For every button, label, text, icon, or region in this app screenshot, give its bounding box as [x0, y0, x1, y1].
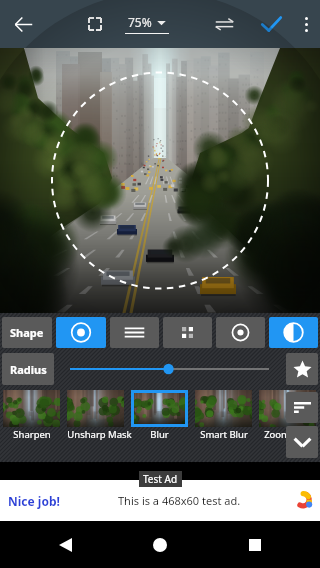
button[interactable]: Compare — [204, 0, 244, 48]
staticText: Radius — [10, 362, 47, 377]
button[interactable]: Sharpen — [3, 390, 60, 440]
staticText: This is a 468x60 test ad. — [118, 493, 241, 508]
staticText: Zoom Blur — [264, 428, 311, 440]
button[interactable]: 75% — [119, 0, 175, 48]
staticText: Shape — [10, 325, 44, 340]
button[interactable]: Ellipse shape — [56, 317, 106, 348]
button[interactable]: Apply — [250, 0, 292, 48]
button[interactable]: Home — [130, 521, 190, 568]
button[interactable]: Back — [35, 521, 95, 568]
staticText: Nice job! — [8, 493, 60, 509]
button[interactable]: Unsharp Mask — [67, 390, 124, 440]
staticText: Blur — [150, 428, 169, 440]
button[interactable]: Shape — [2, 317, 52, 348]
button[interactable]: Radius — [2, 353, 54, 385]
button[interactable]: Zoom Blur — [259, 390, 316, 440]
button[interactable] — [70, 353, 269, 385]
button[interactable]: Mirror shape — [163, 317, 212, 348]
staticText: Smart Blur — [200, 428, 248, 440]
button[interactable]: Sort filters — [286, 392, 318, 423]
button[interactable]: Smart Blur — [195, 390, 252, 440]
button[interactable]: Radial shape — [216, 317, 265, 348]
staticText: 75% — [128, 14, 152, 30]
staticText: Test Ad — [143, 472, 178, 486]
button[interactable]: Fit to screen — [75, 0, 115, 48]
staticText: Unsharp Mask — [67, 428, 124, 440]
button[interactable]: Blur — [131, 390, 188, 440]
staticText: Sharpen — [13, 428, 51, 440]
button[interactable]: More options — [292, 0, 320, 48]
button[interactable]: Back — [0, 0, 46, 48]
button[interactable]: Favourite — [286, 353, 318, 385]
button[interactable]: Invert selection — [269, 317, 318, 348]
button[interactable]: Recent apps — [225, 521, 285, 568]
button[interactable]: Linear shape — [110, 317, 159, 348]
button[interactable]: Collapse — [286, 426, 318, 458]
